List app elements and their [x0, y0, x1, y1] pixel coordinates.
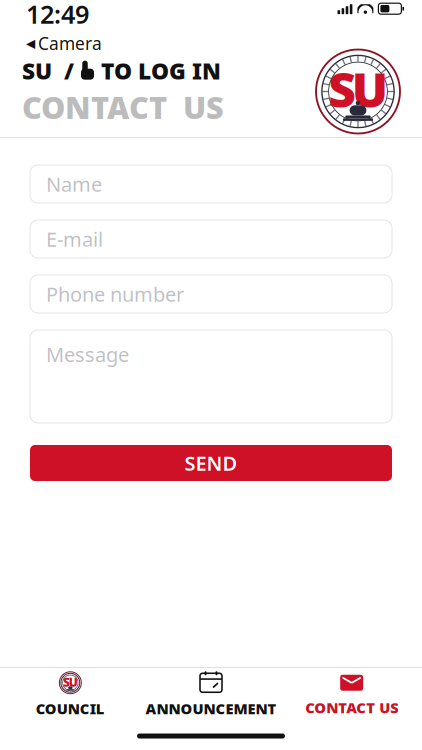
staticText: Name	[46, 171, 102, 197]
staticText: U	[352, 57, 388, 121]
staticText: CONTACT US	[305, 698, 398, 717]
button[interactable]: Phone number	[30, 275, 392, 313]
staticText: ANNOUNCEMENT	[145, 699, 276, 718]
staticText: SEND	[184, 450, 237, 476]
staticText: Phone number	[46, 281, 184, 307]
button[interactable]: E-mail	[30, 220, 392, 258]
staticText: COUNCIL	[36, 699, 105, 718]
staticText: CONTACT US	[22, 87, 224, 127]
staticText: U	[69, 674, 78, 690]
button[interactable]: SEND	[30, 445, 392, 481]
button[interactable]: ANNOUNCEMENT	[141, 665, 281, 725]
staticText: 12:49	[26, 0, 89, 31]
staticText: SU /	[22, 56, 74, 86]
staticText: E-mail	[46, 226, 103, 252]
button[interactable]: S	[0, 665, 141, 725]
button[interactable]: CONTACT US	[281, 666, 422, 724]
staticText: CONTACT US	[22, 87, 224, 127]
staticText: ◀	[26, 36, 35, 50]
staticText: Message	[46, 341, 129, 368]
staticText: TO LOG IN	[101, 56, 221, 86]
staticText: Camera	[38, 32, 102, 55]
button[interactable]: Name	[30, 165, 392, 203]
staticText: S	[63, 674, 70, 690]
button[interactable]: Message	[30, 330, 392, 423]
staticText: S	[328, 57, 356, 121]
